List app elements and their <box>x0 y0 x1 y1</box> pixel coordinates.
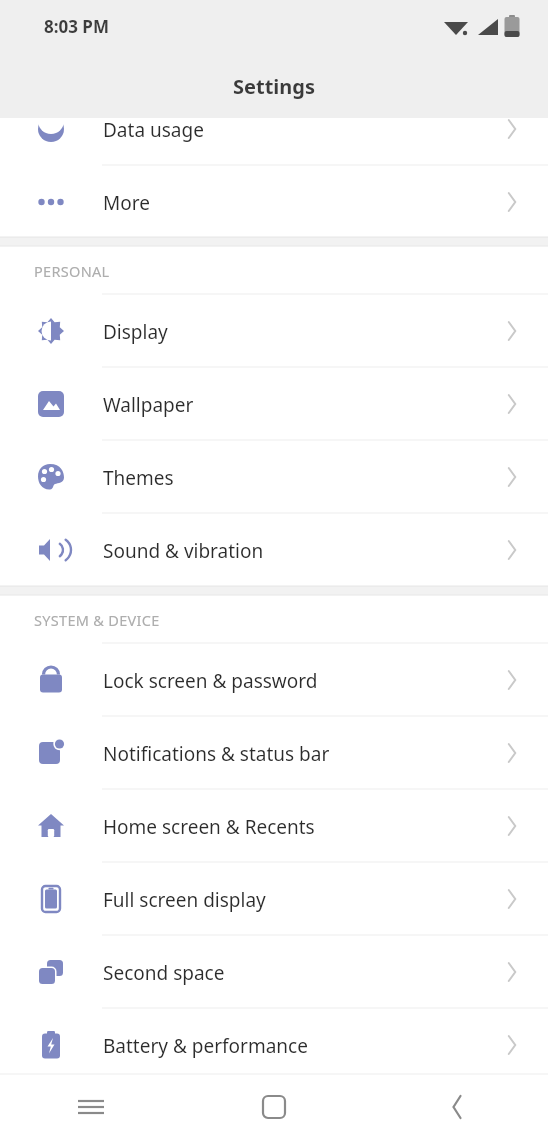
staticText: Notifications & status bar <box>103 741 330 767</box>
staticText: SYSTEM & DEVICE <box>34 610 160 630</box>
staticText: Wallpaper <box>103 392 194 418</box>
staticText: More <box>103 190 150 216</box>
staticText: Data usage <box>103 117 204 143</box>
button[interactable]: Display <box>0 295 548 368</box>
button[interactable]: Full screen display <box>0 863 548 936</box>
button[interactable]: Data usage <box>0 93 548 166</box>
staticText: PERSONAL <box>34 261 110 281</box>
staticText: Display <box>103 319 168 345</box>
button[interactable]: Wallpaper <box>0 368 548 441</box>
button[interactable]: Themes <box>0 441 548 514</box>
staticText: Settings <box>0 73 548 100</box>
staticText: Battery & performance <box>103 1033 308 1059</box>
button[interactable]: Menu <box>0 1074 182 1140</box>
staticText: Sound & vibration <box>103 538 264 564</box>
button[interactable]: More <box>0 166 548 239</box>
button[interactable]: Home screen & Recents <box>0 790 548 863</box>
staticText: Full screen display <box>103 887 266 913</box>
staticText: Lock screen & password <box>103 668 318 694</box>
button[interactable]: Lock screen & password <box>0 644 548 717</box>
staticText: Themes <box>103 465 174 491</box>
button[interactable]: Second space <box>0 936 548 1009</box>
button[interactable]: Home <box>182 1074 365 1140</box>
staticText: Home screen & Recents <box>103 814 315 840</box>
button[interactable]: Notifications & status bar <box>0 717 548 790</box>
staticText: Second space <box>103 960 225 986</box>
button[interactable]: Sound & vibration <box>0 514 548 587</box>
button[interactable]: Back <box>365 1074 548 1140</box>
staticText: 8:03 PM <box>44 15 109 38</box>
button[interactable]: Battery & performance <box>0 1009 548 1082</box>
